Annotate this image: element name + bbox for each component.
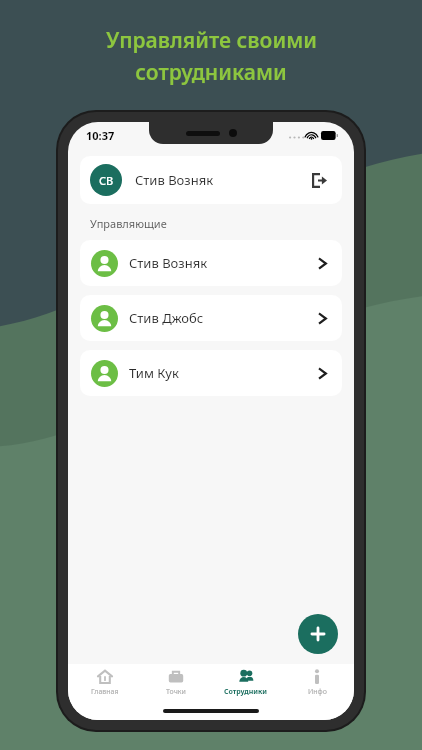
staticText: Тим Кук xyxy=(129,364,179,382)
button[interactable]: Стив Джобс xyxy=(80,295,342,341)
button[interactable]: Инфо xyxy=(284,664,350,702)
button[interactable]: Выйти xyxy=(306,167,332,193)
button[interactable]: Добавить xyxy=(298,614,338,654)
staticText: Стив Возняк xyxy=(135,171,214,189)
staticText: Главная xyxy=(91,687,119,697)
staticText: Управляющие xyxy=(90,216,167,231)
staticText: Стив Возняк xyxy=(129,254,208,272)
staticText: Управляйте своими xyxy=(106,26,317,55)
staticText: Инфо xyxy=(308,687,327,697)
staticText: СВ xyxy=(99,173,114,188)
button[interactable]: Сотрудники xyxy=(213,664,279,702)
staticText: 10:37 xyxy=(86,128,115,143)
button[interactable]: Стив Возняк xyxy=(80,240,342,286)
button[interactable]: Тим Кук xyxy=(80,350,342,396)
staticText: Стив Джобс xyxy=(129,309,204,327)
staticText: сотрудниками xyxy=(135,58,287,87)
staticText: Точки xyxy=(166,687,186,697)
button[interactable]: Точки xyxy=(143,664,209,702)
button[interactable]: Главная xyxy=(72,664,138,702)
staticText: Сотрудники xyxy=(224,687,268,697)
button[interactable]: СВ xyxy=(80,156,342,204)
